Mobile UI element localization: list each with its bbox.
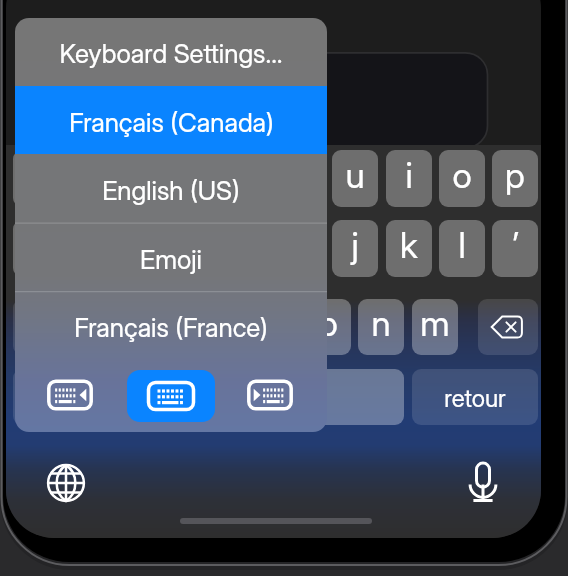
staticText: p [505, 154, 525, 196]
button[interactable]: m [412, 299, 458, 355]
button[interactable]: Current keyboard [127, 370, 215, 422]
staticText: j [351, 224, 359, 266]
button[interactable]: u [332, 150, 378, 207]
button[interactable]: Numbers [13, 369, 77, 425]
button[interactable]: ’ [492, 220, 538, 277]
button[interactable]: l [439, 220, 485, 277]
staticText: c [212, 302, 231, 344]
staticText: e [133, 154, 152, 196]
button[interactable]: c [198, 299, 244, 355]
button[interactable]: t [226, 150, 272, 207]
button[interactable]: Français (France) [15, 293, 327, 361]
button[interactable]: x [145, 299, 191, 355]
button[interactable]: o [439, 150, 485, 207]
staticText: ’ [512, 224, 519, 266]
staticText: b [318, 302, 338, 344]
button[interactable]: k [386, 220, 432, 277]
staticText: retour [444, 384, 506, 413]
staticText: r [189, 154, 201, 196]
button[interactable]: Next keyboard [226, 369, 314, 421]
button[interactable]: Dictation [453, 453, 513, 513]
button[interactable]: f [172, 220, 218, 277]
staticText: Français (France) [74, 312, 268, 343]
button[interactable]: z [66, 150, 112, 207]
staticText: English (US) [102, 175, 240, 206]
staticText: w [102, 302, 129, 344]
button[interactable]: i [386, 150, 432, 207]
staticText: m [420, 302, 450, 344]
button[interactable]: Emoji [15, 225, 327, 293]
button[interactable]: Shift [13, 299, 73, 355]
button[interactable]: d [119, 220, 165, 277]
button[interactable]: n [358, 299, 404, 355]
button[interactable]: b [305, 299, 351, 355]
staticText: f [190, 224, 201, 266]
button[interactable]: r [172, 150, 218, 207]
staticText: Français (Canada) [69, 107, 274, 138]
staticText: Emoji [140, 244, 202, 275]
button[interactable]: English (US) [15, 156, 327, 224]
button[interactable]: j [332, 220, 378, 277]
button[interactable] [151, 369, 404, 425]
button[interactable]: q [13, 220, 59, 277]
button[interactable]: Change keyboard [36, 453, 96, 513]
staticText: i [405, 154, 413, 196]
staticText: l [458, 224, 466, 266]
button[interactable]: Previous keyboard [26, 369, 114, 421]
staticText: v [266, 302, 284, 344]
staticText: k [400, 224, 418, 266]
staticText: x [159, 302, 177, 344]
button[interactable]: w [92, 299, 138, 355]
button[interactable]: Keyboard Settings... [15, 19, 327, 87]
staticText: n [371, 302, 391, 344]
staticText: d [132, 224, 152, 266]
button[interactable]: Français (Canada) [15, 88, 327, 156]
button[interactable]: v [252, 299, 298, 355]
staticText: Keyboard Settings... [59, 38, 283, 69]
button[interactable]: a [13, 150, 59, 207]
staticText: u [345, 154, 365, 196]
button[interactable]: y [279, 150, 325, 207]
button[interactable]: Emoji [86, 369, 142, 425]
button[interactable]: p [492, 150, 538, 207]
staticText: o [452, 154, 472, 196]
button[interactable]: retour [412, 369, 538, 425]
button[interactable]: e [119, 150, 165, 207]
button[interactable]: Backspace [478, 299, 538, 355]
